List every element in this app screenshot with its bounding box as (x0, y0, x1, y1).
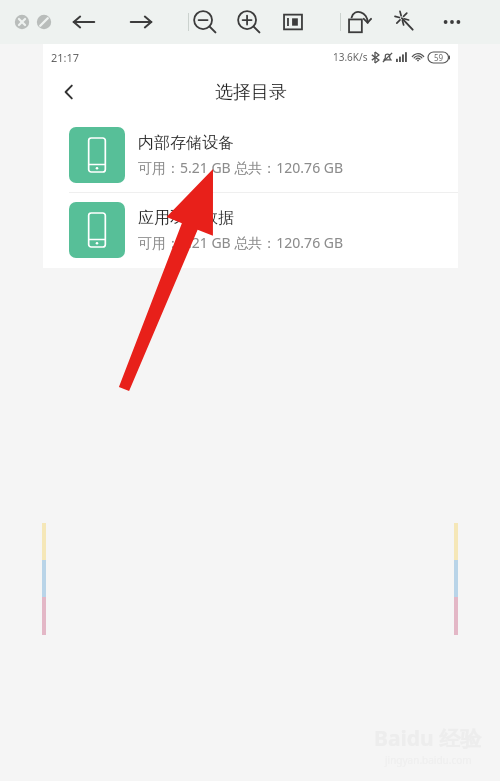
button[interactable]: Back (68, 6, 100, 38)
staticText: 21:17 (51, 50, 80, 65)
button[interactable]: Zoom in (233, 6, 265, 38)
staticText: 可用：5.21 GB 总共：120.76 GB (138, 233, 344, 252)
button[interactable]: 应用双开数据 (43, 193, 458, 267)
button[interactable]: Actual size (277, 6, 309, 38)
staticText: Baidu 经验 (374, 724, 482, 753)
button[interactable]: More options (436, 6, 468, 38)
staticText: 内部存储设备 (138, 133, 234, 153)
staticText: 59 (434, 52, 444, 63)
button[interactable]: Back (49, 72, 89, 112)
button[interactable]: Close (10, 10, 34, 34)
staticText: 可用：5.21 GB 总共：120.76 GB (138, 158, 344, 177)
button[interactable]: Forward (125, 6, 157, 38)
staticText: 13.6K/s (333, 50, 368, 64)
button[interactable]: Block (32, 10, 56, 34)
button[interactable]: Enhance (389, 6, 421, 38)
button[interactable]: Rotate (342, 6, 374, 38)
staticText: 选择目录 (215, 81, 287, 104)
button[interactable]: Zoom out (189, 6, 221, 38)
staticText: 应用双开数据 (138, 208, 234, 228)
button[interactable]: 内部存储设备 (43, 118, 458, 192)
